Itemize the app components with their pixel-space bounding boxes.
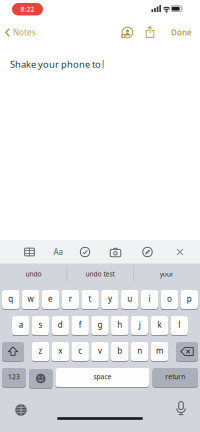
staticText: your bbox=[160, 270, 174, 278]
staticText: s bbox=[38, 319, 42, 330]
button[interactable]: r bbox=[61, 289, 79, 309]
staticText: z bbox=[38, 345, 42, 356]
button[interactable]: m bbox=[151, 341, 168, 361]
staticText: w bbox=[28, 293, 34, 304]
button[interactable]: Notes bbox=[5, 27, 36, 38]
button[interactable]: undo bbox=[3, 265, 63, 283]
button[interactable]: q bbox=[2, 289, 19, 309]
button[interactable] bbox=[121, 26, 134, 39]
staticText: p bbox=[187, 293, 192, 304]
button[interactable]: s bbox=[32, 315, 49, 335]
button[interactable] bbox=[145, 26, 154, 38]
staticText: v bbox=[98, 345, 102, 356]
button[interactable]: h bbox=[111, 315, 128, 335]
button[interactable] bbox=[24, 247, 35, 257]
button[interactable] bbox=[2, 341, 24, 361]
staticText: undo bbox=[25, 270, 41, 278]
staticText: y bbox=[108, 293, 112, 304]
staticText: x bbox=[58, 345, 62, 356]
staticText: r bbox=[69, 293, 72, 304]
staticText: j bbox=[139, 319, 141, 330]
staticText: u bbox=[127, 293, 132, 304]
button[interactable]: g bbox=[91, 315, 109, 335]
staticText: n bbox=[137, 345, 142, 356]
staticText: h bbox=[117, 319, 122, 330]
button[interactable]: o bbox=[161, 289, 178, 309]
staticText: q bbox=[8, 293, 13, 304]
staticText: 123 bbox=[8, 372, 20, 381]
staticText: Notes bbox=[13, 27, 36, 38]
button[interactable] bbox=[15, 404, 27, 416]
button[interactable]: e bbox=[42, 289, 59, 309]
button[interactable]: Done bbox=[171, 27, 192, 38]
staticText: undo test bbox=[85, 270, 114, 278]
staticText: g bbox=[97, 319, 102, 330]
staticText: m bbox=[156, 345, 163, 356]
button[interactable]: c bbox=[71, 341, 89, 361]
staticText: k bbox=[157, 319, 161, 330]
staticText: t bbox=[89, 293, 92, 304]
button[interactable]: return bbox=[152, 367, 198, 387]
staticText: e bbox=[48, 293, 53, 304]
button[interactable]: y bbox=[101, 289, 119, 309]
button[interactable] bbox=[80, 247, 90, 257]
staticText: 8:22 bbox=[20, 5, 34, 14]
button[interactable]: u bbox=[121, 289, 138, 309]
button[interactable]: t bbox=[81, 289, 99, 309]
button[interactable] bbox=[142, 247, 153, 257]
button[interactable] bbox=[29, 368, 52, 388]
button[interactable] bbox=[177, 249, 183, 255]
button[interactable]: undo test bbox=[70, 265, 130, 283]
staticText: return bbox=[165, 372, 185, 381]
button[interactable]: k bbox=[151, 315, 168, 335]
button[interactable]: 8:22 bbox=[12, 3, 43, 16]
button[interactable] bbox=[176, 341, 198, 361]
staticText: i bbox=[149, 293, 151, 304]
button[interactable]: b bbox=[111, 341, 128, 361]
button[interactable]: p bbox=[180, 289, 198, 309]
button[interactable]: v bbox=[91, 341, 109, 361]
button[interactable]: i bbox=[141, 289, 158, 309]
staticText: d bbox=[58, 319, 63, 330]
button[interactable]: space bbox=[55, 367, 149, 387]
button[interactable]: a bbox=[12, 315, 29, 335]
staticText: b bbox=[117, 345, 122, 356]
staticText: space bbox=[93, 372, 111, 381]
staticText: c bbox=[78, 345, 82, 356]
staticText: Shake your phone to bbox=[10, 58, 101, 70]
button[interactable] bbox=[175, 401, 187, 415]
staticText: o bbox=[167, 293, 172, 304]
button[interactable]: j bbox=[131, 315, 148, 335]
staticText: l bbox=[178, 319, 180, 330]
button[interactable]: f bbox=[71, 315, 89, 335]
button[interactable]: x bbox=[52, 341, 69, 361]
staticText: f bbox=[79, 319, 82, 330]
button[interactable]: w bbox=[22, 289, 39, 309]
button[interactable]: d bbox=[52, 315, 69, 335]
button[interactable]: l bbox=[170, 315, 188, 335]
staticText: a bbox=[19, 319, 23, 330]
button[interactable]: Aa bbox=[53, 247, 62, 257]
button[interactable]: your bbox=[137, 265, 197, 283]
staticText: Done bbox=[171, 27, 192, 38]
button[interactable]: 123 bbox=[2, 367, 26, 387]
button[interactable] bbox=[110, 247, 121, 258]
button[interactable]: n bbox=[131, 341, 148, 361]
button[interactable]: z bbox=[32, 341, 49, 361]
staticText: Aa bbox=[53, 247, 62, 257]
